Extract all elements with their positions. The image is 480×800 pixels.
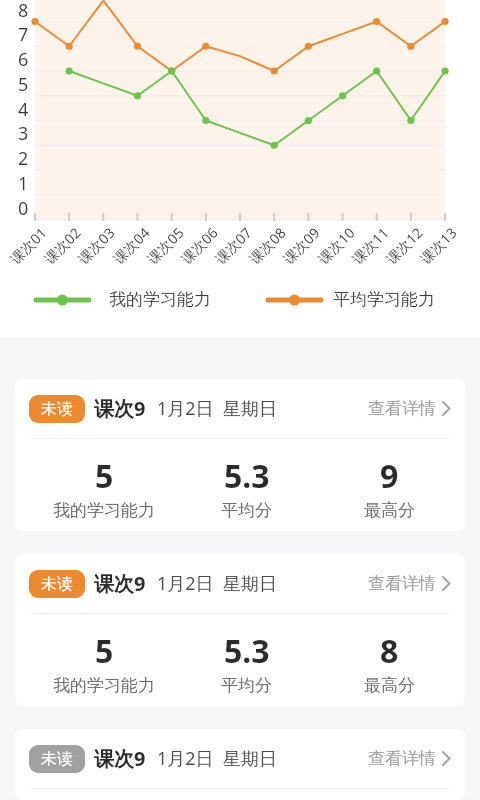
- button[interactable]: 未读: [15, 379, 465, 531]
- staticText: 7: [18, 22, 29, 44]
- button[interactable]: 查看详情: [368, 398, 451, 419]
- staticText: 我的学习能力: [53, 675, 155, 696]
- staticText: 平均分: [221, 500, 272, 521]
- staticText: 查看详情: [368, 748, 436, 769]
- staticText: 1月2日 星期日: [157, 571, 277, 596]
- staticText: 查看详情: [368, 573, 436, 594]
- staticText: 课次09: [279, 223, 324, 268]
- staticText: 1月2日 星期日: [157, 746, 277, 771]
- staticText: 6: [18, 47, 29, 69]
- staticText: 1: [18, 171, 29, 193]
- button[interactable]: 未读: [15, 729, 465, 800]
- staticText: 最高分: [364, 675, 415, 696]
- staticText: 未读: [41, 749, 73, 769]
- staticText: 最高分: [364, 500, 415, 521]
- staticText: 2: [18, 146, 29, 168]
- button[interactable]: 查看详情: [368, 748, 451, 769]
- staticText: 5.3: [224, 629, 270, 673]
- staticText: 未读: [41, 399, 73, 419]
- staticText: 课次10: [314, 223, 359, 268]
- staticText: 平均分: [221, 675, 272, 696]
- staticText: 9: [380, 454, 399, 498]
- staticText: 课次06: [177, 223, 222, 268]
- staticText: 课次01: [6, 223, 51, 268]
- staticText: 平均学习能力: [333, 289, 435, 310]
- button[interactable]: 未读: [15, 554, 465, 706]
- staticText: 课次9: [94, 570, 146, 597]
- button[interactable]: 查看详情: [368, 573, 451, 594]
- staticText: 5: [95, 629, 114, 673]
- staticText: 5.3: [224, 454, 270, 498]
- staticText: 课次9: [94, 745, 146, 772]
- staticText: 课次04: [109, 223, 154, 268]
- staticText: 课次12: [382, 223, 427, 268]
- staticText: 课次03: [74, 223, 119, 268]
- staticText: 课次9: [94, 395, 146, 422]
- staticText: 课次07: [211, 223, 256, 268]
- staticText: 3: [18, 121, 29, 143]
- staticText: 未读: [41, 574, 73, 594]
- staticText: 我的学习能力: [109, 289, 211, 310]
- staticText: 课次13: [416, 223, 461, 268]
- staticText: 课次02: [40, 223, 85, 268]
- staticText: 5: [18, 72, 29, 94]
- staticText: 5: [95, 454, 114, 498]
- staticText: 课次05: [143, 223, 188, 268]
- staticText: 8: [380, 629, 399, 673]
- staticText: 课次08: [245, 223, 290, 268]
- staticText: 查看详情: [368, 398, 436, 419]
- staticText: 1月2日 星期日: [157, 396, 277, 421]
- staticText: 0: [18, 196, 29, 218]
- staticText: 我的学习能力: [53, 500, 155, 521]
- staticText: 8: [18, 0, 29, 20]
- staticText: 4: [18, 97, 29, 119]
- staticText: 课次11: [348, 223, 393, 268]
